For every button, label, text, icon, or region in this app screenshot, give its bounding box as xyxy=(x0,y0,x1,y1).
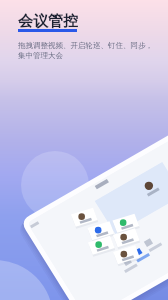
staticText: 会议管控 xyxy=(18,12,78,31)
staticText: 拖拽调整视频、开启轮巡、钉住、同步， 集中管理大会 xyxy=(18,41,153,60)
